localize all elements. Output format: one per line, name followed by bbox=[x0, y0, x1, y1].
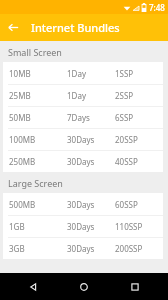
staticText: 40SSP bbox=[115, 156, 163, 167]
button[interactable]: Home bbox=[66, 273, 102, 300]
staticText: 7:48 bbox=[149, 2, 165, 13]
button[interactable]: 10MB bbox=[3, 62, 163, 84]
staticText: 1SSP bbox=[115, 68, 163, 79]
staticText: 7Days bbox=[67, 112, 115, 123]
staticText: 6SSP bbox=[115, 112, 163, 123]
staticText: 250MB bbox=[9, 156, 67, 167]
staticText: Small Screen bbox=[8, 46, 62, 58]
staticText: 1Day bbox=[67, 68, 115, 79]
staticText: 60SSP bbox=[115, 199, 163, 210]
staticText: 30Days bbox=[67, 156, 115, 167]
staticText: 30Days bbox=[67, 199, 115, 210]
staticText: 25MB bbox=[9, 90, 67, 101]
button[interactable]: 250MB bbox=[3, 151, 163, 172]
button[interactable]: Recent apps bbox=[117, 273, 153, 300]
staticText: 20SSP bbox=[115, 134, 163, 145]
staticText: 200SSP bbox=[115, 243, 163, 254]
staticText: 110SSP bbox=[115, 221, 163, 232]
staticText: 30Days bbox=[67, 221, 115, 232]
staticText: 1Day bbox=[67, 90, 115, 101]
staticText: 2SSP bbox=[115, 90, 163, 101]
staticText: 500MB bbox=[9, 199, 67, 210]
button[interactable]: 500MB bbox=[3, 193, 163, 215]
staticText: 1GB bbox=[9, 221, 67, 232]
staticText: 30Days bbox=[67, 243, 115, 254]
button[interactable]: Back bbox=[0, 14, 27, 41]
button[interactable]: 25MB bbox=[3, 85, 163, 106]
button[interactable]: Back bbox=[15, 273, 51, 300]
button[interactable]: 3GB bbox=[3, 238, 163, 259]
button[interactable]: 1GB bbox=[3, 216, 163, 237]
staticText: Internet Bundles bbox=[31, 20, 120, 35]
staticText: Large Screen bbox=[8, 177, 63, 189]
staticText: 50MB bbox=[9, 112, 67, 123]
staticText: 30Days bbox=[67, 134, 115, 145]
button[interactable]: 100MB bbox=[3, 129, 163, 150]
staticText: 10MB bbox=[9, 68, 67, 79]
staticText: 3GB bbox=[9, 243, 67, 254]
staticText: 100MB bbox=[9, 134, 67, 145]
button[interactable]: 50MB bbox=[3, 107, 163, 128]
